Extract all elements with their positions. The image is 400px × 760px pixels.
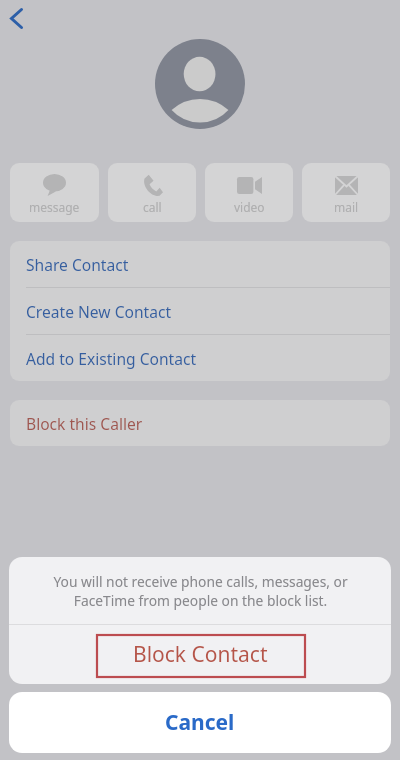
button[interactable]: message — [10, 163, 99, 222]
button[interactable]: Back — [1, 3, 31, 33]
staticText: call — [143, 199, 162, 215]
button[interactable]: Cancel — [9, 692, 391, 753]
button[interactable]: Block Contact — [9, 625, 391, 684]
button[interactable]: call — [108, 163, 196, 222]
button[interactable]: Share Contact — [10, 241, 390, 287]
button[interactable]: Add to Existing Contact — [10, 335, 390, 381]
staticText: mail — [334, 199, 359, 215]
staticText: Add to Existing Contact — [26, 348, 197, 369]
staticText: Block Contact — [133, 640, 268, 669]
staticText: message — [29, 199, 80, 215]
staticText: Create New Contact — [26, 301, 172, 322]
button[interactable]: Block this Caller — [10, 400, 390, 446]
staticText: Cancel — [165, 708, 235, 737]
staticText: You will not receive phone calls, messag… — [53, 572, 348, 610]
button[interactable]: Create New Contact — [10, 288, 390, 334]
button[interactable]: video — [205, 163, 293, 222]
staticText: video — [234, 199, 265, 215]
staticText: Block this Caller — [26, 413, 143, 434]
button[interactable]: mail — [302, 163, 390, 222]
staticText: Share Contact — [26, 254, 129, 275]
